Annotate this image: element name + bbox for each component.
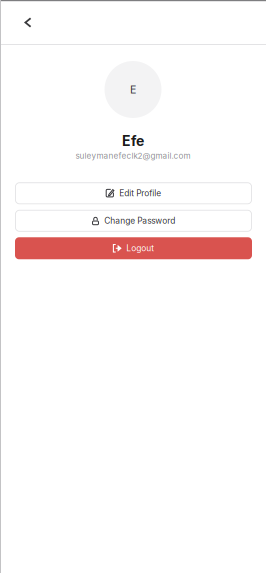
button[interactable]: Edit Profile <box>15 182 252 204</box>
staticText: suleymanefeclk2@gmail.com <box>75 151 190 161</box>
staticText: Change Password <box>104 216 175 226</box>
staticText: E <box>130 83 136 96</box>
staticText: Efe <box>122 132 144 149</box>
button[interactable]: Logout <box>15 237 252 259</box>
button[interactable]: Back <box>15 9 41 35</box>
staticText: Edit Profile <box>119 188 161 198</box>
staticText: Logout <box>126 243 154 253</box>
button[interactable]: Change Password <box>15 210 252 232</box>
